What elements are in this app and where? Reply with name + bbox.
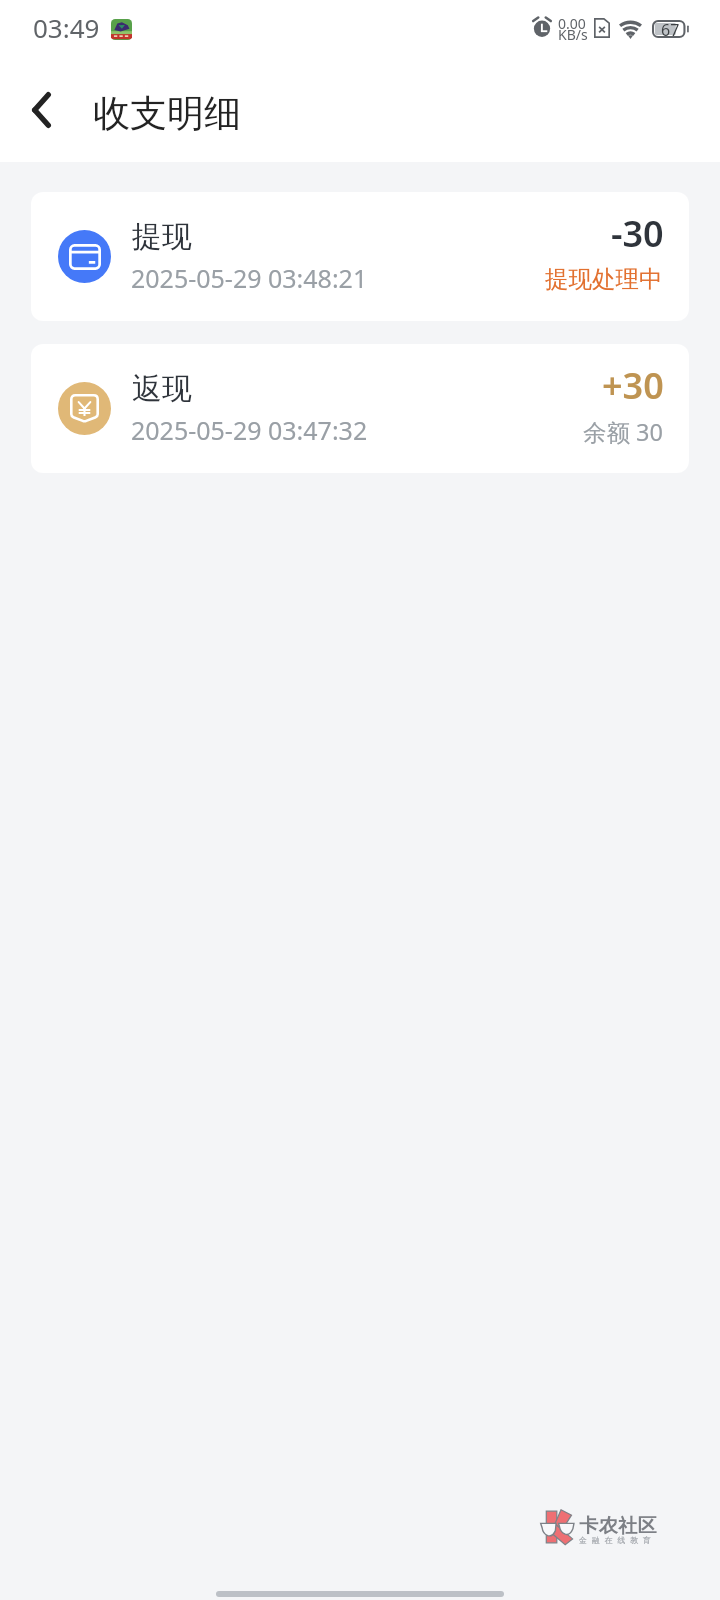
staticText: 余额 30	[583, 416, 663, 448]
staticText: 2025-05-29 03:48:21	[131, 261, 368, 295]
staticText: 卡农社区	[579, 1514, 657, 1538]
button[interactable]: 返现	[31, 344, 689, 473]
staticText: 0.00	[558, 14, 586, 33]
staticText: 03:49	[33, 10, 100, 45]
staticText: KB/s	[558, 25, 588, 44]
staticText: 金融在线教育	[579, 1535, 656, 1545]
staticText: 67	[661, 19, 680, 41]
button[interactable]: 返回	[6, 75, 76, 145]
staticText: 2025-05-29 03:47:32	[131, 413, 368, 447]
staticText: 返现	[132, 370, 192, 408]
staticText: 收支明细	[93, 90, 241, 137]
staticText: 提现处理中	[545, 264, 663, 294]
staticText: 提现	[132, 218, 192, 256]
staticText: -30	[611, 209, 664, 258]
staticText: +30	[602, 361, 664, 410]
button[interactable]: 提现	[31, 192, 689, 321]
